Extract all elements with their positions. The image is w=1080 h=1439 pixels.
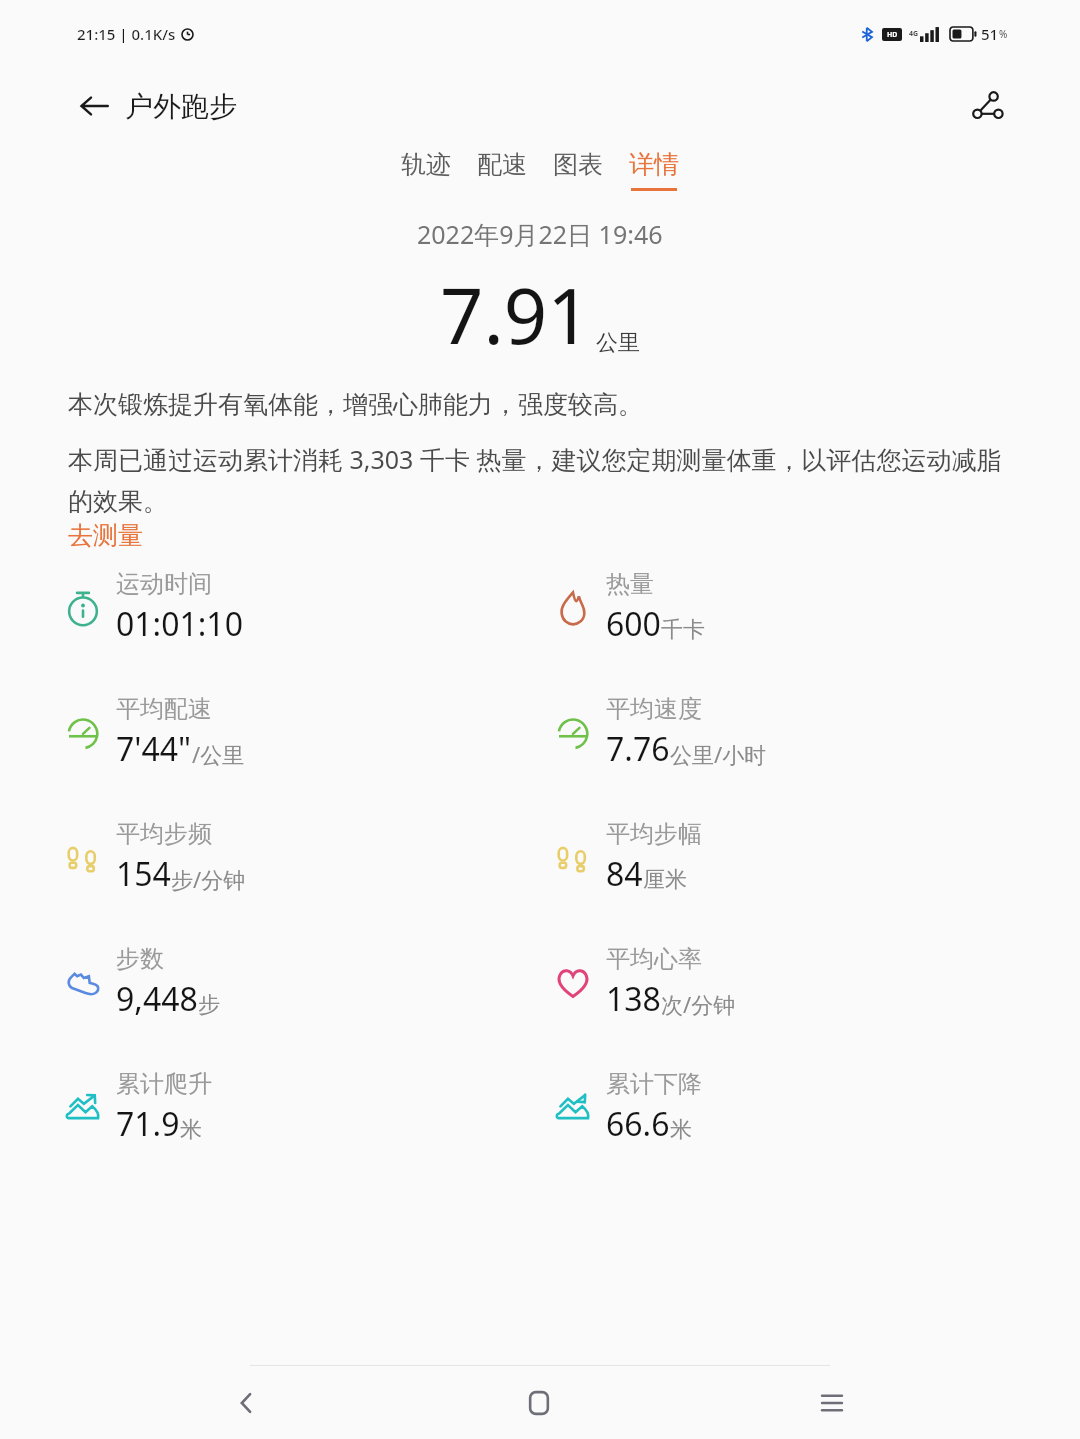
button[interactable]: 图表 <box>540 145 616 195</box>
staticText: 7.91 <box>440 263 591 367</box>
button[interactable]: Share <box>962 81 1012 131</box>
staticText: 轨迹 <box>401 149 451 180</box>
staticText: 步数 <box>116 944 164 974</box>
staticText: 平均心率 <box>606 944 702 974</box>
staticText: % <box>999 27 1008 41</box>
staticText: 01:01:10 <box>116 602 243 646</box>
staticText: 米 <box>180 1116 202 1144</box>
staticText: 厘米 <box>643 866 687 894</box>
button[interactable]: 平均步幅 <box>550 819 1040 896</box>
staticText: 公里/小时 <box>670 739 767 769</box>
staticText: 51 <box>981 24 999 44</box>
button[interactable]: 热量 <box>550 569 1040 646</box>
staticText: 累计爬升 <box>116 1069 212 1099</box>
button[interactable]: 轨迹 <box>388 145 464 195</box>
button[interactable]: 去测量 <box>68 520 143 551</box>
staticText: 详情 <box>629 149 679 180</box>
staticText: 7'44" <box>116 727 192 771</box>
staticText: 次/分钟 <box>661 989 736 1019</box>
staticText: 9,448 <box>116 977 198 1021</box>
button[interactable]: 累计下降 <box>550 1069 1040 1146</box>
button[interactable]: Back <box>72 84 116 128</box>
button[interactable]: 平均步频 <box>60 819 550 896</box>
staticText: 配速 <box>477 149 527 180</box>
staticText: 户外跑步 <box>125 89 237 124</box>
staticText: 600 <box>606 602 661 646</box>
staticText: 84 <box>606 852 643 896</box>
button[interactable]: Recents <box>787 1366 877 1439</box>
staticText: 21:15 | 0.1K/s <box>77 24 176 44</box>
button[interactable]: 平均速度 <box>550 694 1040 771</box>
staticText: 4G <box>909 29 919 39</box>
staticText: /公里 <box>192 739 245 769</box>
staticText: 本次锻炼提升有氧体能，增强心肺能力，强度较高。 <box>68 389 643 420</box>
staticText: 平均配速 <box>116 694 212 724</box>
staticText: 去测量 <box>68 520 143 551</box>
staticText: 66.6 <box>606 1102 670 1146</box>
staticText: 71.9 <box>116 1102 180 1146</box>
staticText: 平均速度 <box>606 694 702 724</box>
staticText: 米 <box>670 1116 692 1144</box>
staticText: 步 <box>198 991 220 1019</box>
staticText: 千卡 <box>661 616 705 644</box>
staticText: 本周已通过运动累计消耗 3,303 千卡 热量，建议您定期测量体重，以评估您运动… <box>68 442 1018 518</box>
staticText: 累计下降 <box>606 1069 702 1099</box>
button[interactable]: Home <box>494 1366 584 1439</box>
staticText: 平均步幅 <box>606 819 702 849</box>
button[interactable]: 平均心率 <box>550 944 1040 1021</box>
staticText: 图表 <box>553 149 603 180</box>
button[interactable]: Back <box>202 1366 292 1439</box>
button[interactable]: 运动时间 <box>60 569 550 646</box>
staticText: 154 <box>116 852 171 896</box>
button[interactable]: 步数 <box>60 944 550 1021</box>
button[interactable]: 配速 <box>464 145 540 195</box>
staticText: 运动时间 <box>116 569 212 599</box>
staticText: HD <box>887 30 898 40</box>
button[interactable]: 平均配速 <box>60 694 550 771</box>
staticText: 7.76 <box>606 727 670 771</box>
staticText: 2022年9月22日 19:46 <box>417 217 663 251</box>
staticText: 热量 <box>606 569 654 599</box>
staticText: 138 <box>606 977 661 1021</box>
button[interactable]: 详情 <box>616 145 692 195</box>
staticText: 步/分钟 <box>171 864 246 894</box>
staticText: 公里 <box>596 329 640 357</box>
button[interactable]: 累计爬升 <box>60 1069 550 1146</box>
staticText: 平均步频 <box>116 819 212 849</box>
